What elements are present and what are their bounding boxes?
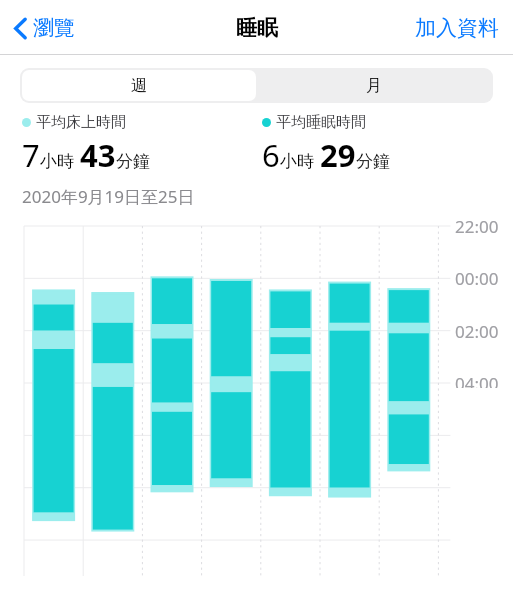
staticText: 2020年9月19日至25日 <box>22 185 195 208</box>
button[interactable]: 加入資料 <box>401 7 513 49</box>
staticText: 睡眠 <box>236 15 278 41</box>
other: Back <box>14 18 27 39</box>
staticText: 7 <box>22 134 40 176</box>
button[interactable]: 月 <box>256 70 491 101</box>
staticText: 02:00 <box>455 320 499 343</box>
staticText: 月 <box>366 76 382 96</box>
staticText: 6 <box>262 134 280 176</box>
staticText: 平均睡眠時間 <box>276 113 366 132</box>
staticText: 22:00 <box>455 215 499 238</box>
staticText: 分鐘 <box>116 151 150 172</box>
staticText: 加入資料 <box>415 15 499 41</box>
staticText: 分鐘 <box>356 151 390 172</box>
staticText: 週 <box>131 76 147 96</box>
staticText: 小時 <box>280 151 314 172</box>
staticText: 43 <box>80 134 116 176</box>
staticText: 小時 <box>40 151 74 172</box>
button[interactable]: 週 <box>22 70 256 101</box>
button[interactable]: Back <box>0 7 87 49</box>
staticText: 00:00 <box>455 267 499 290</box>
staticText: 瀏覽 <box>33 15 75 41</box>
staticText: 04:00 <box>455 372 499 388</box>
staticText: 29 <box>320 134 356 176</box>
staticText: 平均床上時間 <box>36 113 126 132</box>
